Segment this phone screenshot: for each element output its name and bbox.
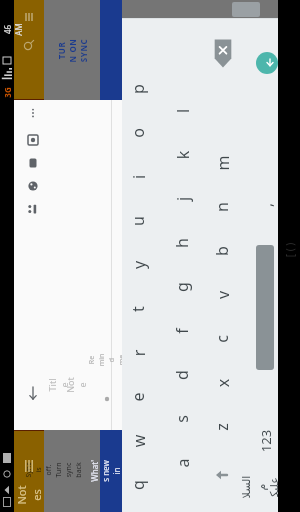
button[interactable]: d: [170, 353, 194, 397]
button[interactable]: Backspace: [210, 36, 236, 70]
staticText: n: [211, 202, 233, 212]
button[interactable]: Add image: [24, 200, 42, 218]
staticText: z: [211, 423, 233, 431]
staticText: TURN ON SYNC: [55, 38, 88, 62]
button[interactable]: Home: [2, 468, 12, 480]
staticText: x: [211, 378, 233, 387]
button[interactable]: Add: [24, 131, 42, 149]
button[interactable]: More options: [24, 104, 42, 122]
staticText: Title: [46, 377, 70, 393]
button[interactable]: TURN ON SYNC: [60, 10, 84, 90]
button[interactable]: g: [170, 265, 194, 309]
staticText: k: [171, 150, 193, 159]
button[interactable]: Navigation drawer: [18, 455, 40, 477]
button[interactable]: Change colour: [24, 177, 42, 195]
staticText: 123: [256, 429, 274, 452]
button[interactable]: a: [170, 441, 194, 485]
button[interactable]: n: [210, 185, 234, 229]
staticText: [ ( ): [282, 242, 296, 257]
staticText: u: [127, 216, 149, 226]
button[interactable]: r: [126, 331, 150, 375]
button[interactable]: Reminder: [100, 392, 114, 406]
staticText: y: [127, 260, 149, 269]
button[interactable]: t: [126, 287, 150, 331]
button[interactable]: y: [126, 243, 150, 287]
button[interactable]: Menu: [2, 496, 12, 508]
button[interactable]: l: [170, 89, 194, 133]
button[interactable]: 123: [252, 420, 278, 462]
staticText: i: [127, 174, 149, 179]
button[interactable]: c: [210, 317, 234, 361]
button[interactable]: Delete: [24, 154, 42, 172]
button[interactable]: السلام عليكم: [252, 462, 278, 512]
button[interactable]: f: [170, 309, 194, 353]
button[interactable]: m: [210, 141, 234, 185]
staticText: 10:46 AM: [0, 22, 23, 36]
staticText: b: [211, 246, 233, 256]
button[interactable]: Recents: [2, 452, 12, 464]
staticText: o: [127, 128, 149, 138]
staticText: c: [211, 335, 233, 343]
staticText: f: [171, 328, 193, 334]
button[interactable]: e: [126, 375, 150, 419]
button[interactable]: [100, 430, 122, 512]
button[interactable]: z: [210, 405, 234, 449]
button[interactable]: i: [126, 155, 150, 199]
button[interactable]: More options: [20, 8, 38, 26]
staticText: r: [127, 349, 149, 356]
button[interactable]: Space: [256, 245, 274, 370]
button[interactable]: o: [126, 111, 150, 155]
staticText: j: [171, 196, 193, 201]
staticText: Sync is off. Turn sync back: [24, 462, 84, 478]
button[interactable]: Enter: [256, 52, 278, 74]
button[interactable]: Search: [20, 36, 38, 54]
button[interactable]: u: [126, 199, 150, 243]
staticText: السلام عليكم: [240, 474, 290, 500]
button[interactable]: j: [170, 177, 194, 221]
staticText: l: [171, 108, 193, 113]
staticText: q: [127, 480, 149, 490]
button[interactable]: s: [170, 397, 194, 441]
staticText: t: [127, 306, 149, 312]
staticText: m: [211, 155, 233, 170]
staticText: w: [127, 434, 149, 447]
button[interactable]: v: [210, 273, 234, 317]
staticText: s: [171, 415, 193, 423]
staticText: e: [127, 392, 149, 402]
button[interactable]: x: [210, 361, 234, 405]
staticText: a: [171, 458, 193, 467]
staticText: Remind me: [87, 353, 127, 367]
staticText: d: [171, 370, 193, 380]
staticText: 3G: [2, 87, 13, 98]
staticText: v: [211, 290, 233, 299]
staticText: p: [127, 84, 149, 94]
button[interactable]: h: [170, 221, 194, 265]
button[interactable]: Shift: [210, 455, 234, 495]
button[interactable]: Back: [24, 384, 42, 402]
staticText: Note: [64, 377, 88, 393]
button[interactable]: k: [170, 133, 194, 177]
button[interactable]: p: [126, 67, 150, 111]
button[interactable]: q: [126, 463, 150, 507]
button[interactable]: ,: [252, 185, 278, 225]
staticText: ,: [255, 202, 275, 207]
staticText: What's new in Keep: [89, 460, 133, 482]
staticText: Notes: [14, 484, 44, 506]
button[interactable]: Back: [2, 484, 12, 496]
button[interactable]: w: [126, 419, 150, 463]
staticText: g: [171, 282, 193, 292]
staticText: h: [171, 238, 193, 248]
button[interactable]: b: [210, 229, 234, 273]
